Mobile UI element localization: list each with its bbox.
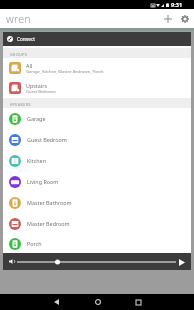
button[interactable]: Volume <box>6 256 17 267</box>
staticText: Master Bathroom <box>27 199 72 206</box>
staticText: All <box>26 62 33 69</box>
button[interactable]: Garage <box>3 108 191 129</box>
staticText: Porch <box>27 240 42 247</box>
button[interactable]: Master Bathroom <box>3 192 191 213</box>
button[interactable]: Settings <box>177 11 192 26</box>
staticText: wren <box>6 12 31 26</box>
staticText: Guest Bedroom <box>27 136 67 143</box>
staticText: Master Bedroom <box>27 220 70 227</box>
staticText: Garage <box>27 115 46 122</box>
staticText: SPEAKERS <box>10 102 32 107</box>
button[interactable]: Living Room <box>3 171 191 192</box>
staticText: GROUPS <box>10 52 28 57</box>
staticText: 9:31 <box>171 1 183 9</box>
button[interactable]: Master Bedroom <box>3 213 191 234</box>
staticText: Garage, Kitchen, Master Bedroom, Porch <box>26 69 104 75</box>
staticText: Upstairs <box>26 82 48 89</box>
staticText: Guest Bedroom <box>26 89 56 95</box>
button[interactable]: Guest Bedroom <box>3 129 191 150</box>
button[interactable]: Add <box>160 11 175 26</box>
button[interactable]: All <box>3 58 191 78</box>
button[interactable]: Kitchen <box>3 150 191 171</box>
staticText: Kitchen <box>27 157 46 164</box>
staticText: Living Room <box>27 178 59 185</box>
staticText: Connect <box>17 36 35 42</box>
button[interactable]: Play <box>176 256 188 268</box>
button[interactable]: Recents <box>125 294 151 310</box>
button[interactable]: Porch <box>3 234 191 253</box>
button[interactable]: Back <box>43 294 69 310</box>
button[interactable]: Connect <box>3 32 191 46</box>
button[interactable]: Home <box>85 294 111 310</box>
button[interactable]: Upstairs <box>3 78 191 98</box>
